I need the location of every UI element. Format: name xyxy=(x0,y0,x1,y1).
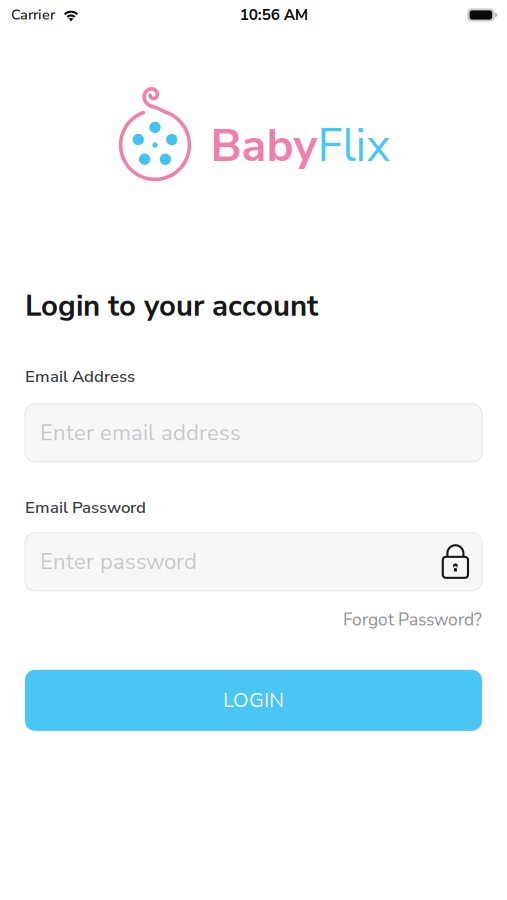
staticText: Flix xyxy=(317,115,390,177)
staticText: 10:56 AM xyxy=(240,4,308,25)
staticText: Email Address xyxy=(25,365,135,388)
button[interactable]: Forgot Password? xyxy=(25,607,482,633)
staticText: Enter password xyxy=(40,547,197,577)
staticText: Enter email address xyxy=(40,418,241,448)
staticText: Email Password xyxy=(25,496,146,519)
button[interactable]: LOGIN xyxy=(25,670,482,731)
staticText: LOGIN xyxy=(223,686,284,714)
staticText: Carrier xyxy=(11,5,55,25)
staticText: Login to your account xyxy=(25,286,318,326)
staticText: Baby xyxy=(210,115,317,177)
staticText: Forgot Password? xyxy=(343,608,482,632)
